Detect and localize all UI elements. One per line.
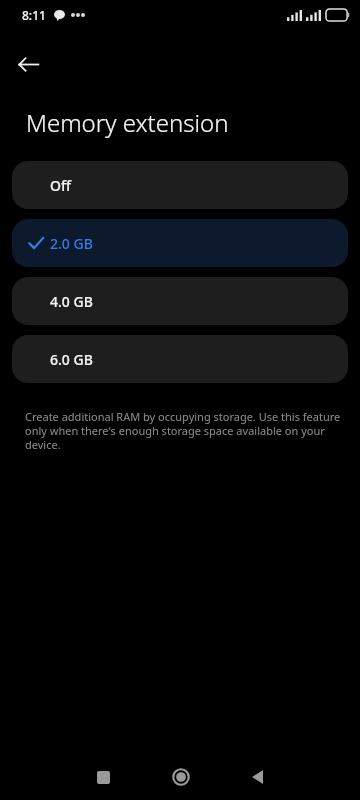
button[interactable]: Off [12,161,348,209]
button[interactable]: Back [219,754,296,800]
staticText: Create additional RAM by occupying stora… [25,409,344,452]
staticText: Memory extension [26,106,229,139]
button[interactable]: 2.0 GB [12,219,348,267]
button[interactable]: Home [142,754,219,800]
staticText: 2.0 GB [50,234,93,253]
button[interactable]: 4.0 GB [12,277,348,325]
staticText: 6.0 GB [50,350,93,369]
staticText: Off [50,176,71,195]
staticText: 4.0 GB [50,292,93,311]
button[interactable]: Back [0,36,56,92]
button[interactable]: 6.0 GB [12,335,348,383]
button[interactable]: Recents [65,754,142,800]
staticText: 8:11 [22,7,46,23]
